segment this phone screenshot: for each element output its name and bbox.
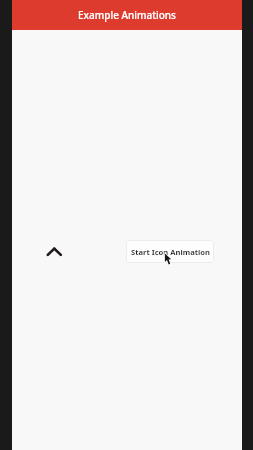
staticText: Example Animations: [78, 8, 176, 22]
button[interactable]: Expand less: [41, 238, 69, 266]
staticText: Start Icon Animation: [131, 247, 210, 257]
button[interactable]: Start Icon Animation: [126, 240, 214, 263]
